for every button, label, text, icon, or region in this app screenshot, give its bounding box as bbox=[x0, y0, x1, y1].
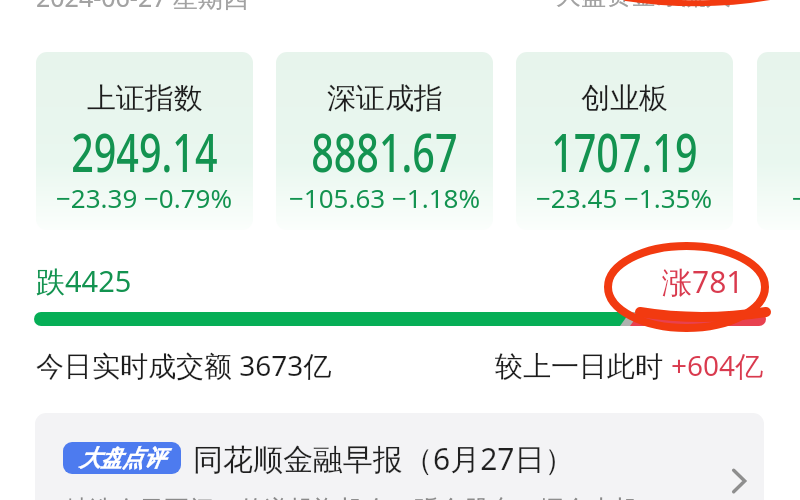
staticText: 8881.67 bbox=[311, 116, 458, 187]
button[interactable]: 深证成指 bbox=[276, 52, 493, 230]
staticText: −0.79% bbox=[144, 180, 233, 215]
button[interactable]: 科创50 bbox=[757, 52, 800, 230]
staticText: +604亿 bbox=[671, 346, 764, 384]
staticText: 跌4425 bbox=[36, 261, 132, 301]
button[interactable]: 创业板 bbox=[516, 52, 733, 230]
staticText: 2949.14 bbox=[71, 116, 218, 187]
staticText: −8.09 bbox=[792, 180, 800, 215]
staticText: 涨781 bbox=[662, 261, 744, 302]
staticText: 同花顺金融早报（6月27日） bbox=[193, 438, 575, 479]
staticText: 1707.19 bbox=[551, 116, 698, 187]
staticText: 2024-06-27 星期四 bbox=[36, 0, 249, 14]
staticText: −105.63 bbox=[289, 180, 386, 215]
staticText: −23.39 bbox=[56, 180, 138, 215]
staticText: 上证指数 bbox=[87, 80, 203, 117]
staticText: −1.35% bbox=[624, 180, 713, 215]
staticText: 大盘点评 bbox=[79, 444, 165, 473]
button[interactable]: 大盘点评 bbox=[35, 413, 764, 500]
staticText: 深证成指 bbox=[327, 80, 443, 117]
staticText: 今日实时成交额 3673亿 bbox=[36, 346, 332, 384]
staticText: −1.18% bbox=[392, 180, 481, 215]
staticText: −23.45 bbox=[536, 180, 618, 215]
staticText: 大盘资金净流入 bbox=[556, 0, 731, 11]
staticText: 较上一日此时 bbox=[495, 346, 671, 384]
button[interactable]: 上证指数 bbox=[36, 52, 253, 230]
staticText: 精选今日要闻，传递投资机会，听金股东，掘金大机 bbox=[64, 494, 639, 500]
other: Open article bbox=[726, 469, 750, 493]
staticText: 创业板 bbox=[581, 80, 668, 117]
